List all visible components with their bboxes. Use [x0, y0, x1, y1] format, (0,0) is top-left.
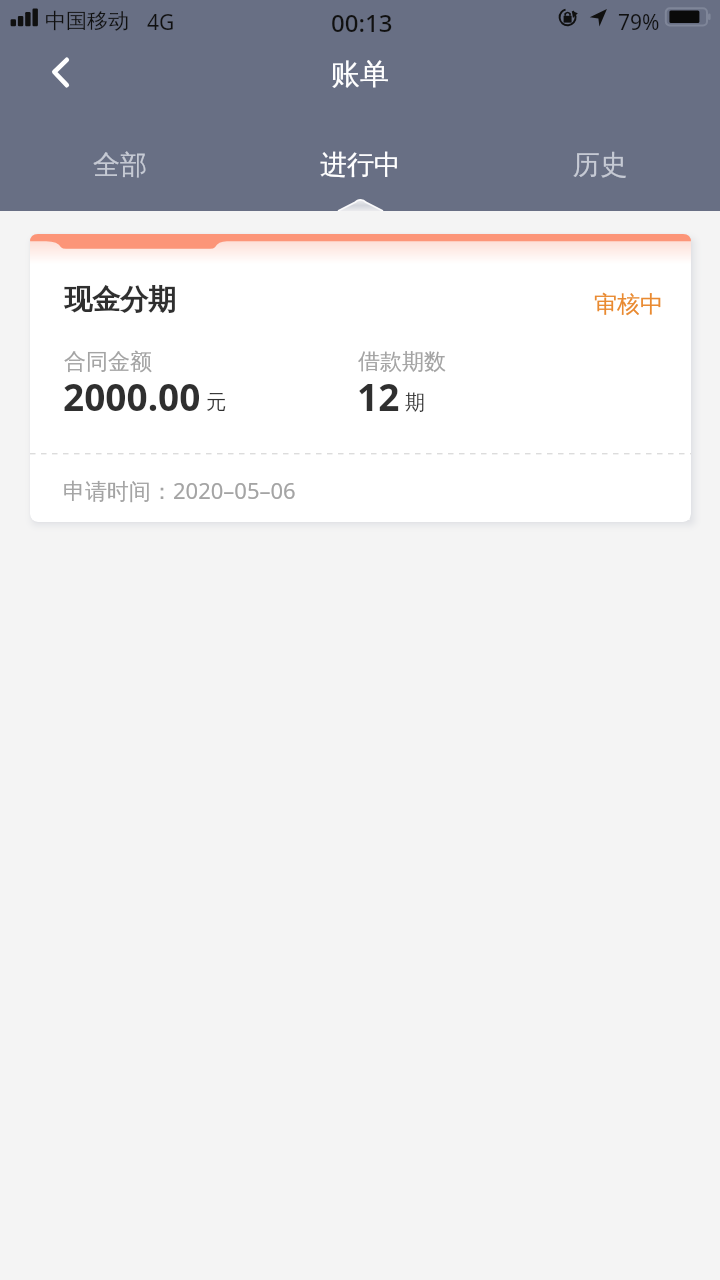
staticText: 申请时间：2020–05–06	[63, 475, 296, 505]
button[interactable]: 历史	[480, 139, 720, 191]
staticText: 现金分期	[64, 282, 176, 317]
staticText: 12	[357, 371, 400, 421]
staticText: 全部	[93, 148, 147, 182]
staticText: 合同金额	[64, 348, 152, 376]
staticText: 2000.00	[63, 371, 201, 421]
button[interactable]: 进行中	[240, 139, 480, 191]
staticText: 审核中	[594, 290, 663, 319]
staticText: 00:13	[331, 6, 393, 39]
staticText: 79%	[618, 8, 660, 37]
staticText: 中国移动	[45, 8, 129, 34]
staticText: 进行中	[320, 148, 401, 182]
staticText: 账单	[331, 56, 389, 93]
button[interactable]: Back	[30, 42, 92, 104]
staticText: 4G	[147, 8, 175, 37]
staticText: 历史	[573, 148, 627, 182]
staticText: 借款期数	[358, 348, 446, 376]
staticText: 元	[206, 390, 226, 415]
staticText: 期	[405, 390, 425, 415]
button[interactable]: 现金分期	[30, 234, 691, 522]
button[interactable]: 全部	[0, 139, 240, 191]
